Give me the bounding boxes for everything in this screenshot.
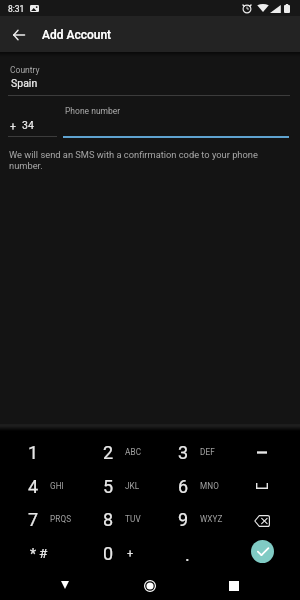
button[interactable]: Navigate up [1, 16, 36, 52]
button[interactable]: Confirm [251, 540, 274, 563]
staticText: ABC [125, 447, 142, 457]
staticText: JKL [125, 481, 140, 491]
button[interactable]: Period [150, 536, 225, 570]
button[interactable]: 4 [0, 469, 75, 503]
staticText: 1 [28, 442, 39, 463]
staticText: 34 [22, 119, 34, 131]
button[interactable]: 7 [0, 502, 75, 536]
staticText: Country [10, 65, 40, 75]
staticText: Spain [11, 77, 38, 89]
staticText: PRQS [50, 514, 72, 524]
staticText: # [39, 545, 48, 561]
button[interactable]: Dash [225, 435, 300, 469]
button[interactable]: 1 [0, 435, 75, 469]
staticText: 8 [103, 509, 114, 530]
button[interactable]: Country calling code +34 [6, 112, 58, 138]
button[interactable]: Phone number [63, 104, 290, 138]
staticText: * [30, 546, 37, 562]
button[interactable]: Home [130, 571, 170, 600]
staticText: MNO [200, 481, 219, 491]
button[interactable]: Back [45, 571, 85, 600]
staticText: + [127, 547, 134, 560]
button[interactable]: 9 [150, 502, 225, 536]
staticText: 4 [28, 476, 39, 497]
button[interactable]: 6 [150, 469, 225, 503]
staticText: DEF [200, 447, 215, 457]
staticText: Phone number [65, 106, 121, 116]
staticText: 8:31 [8, 4, 25, 14]
button[interactable]: 2 [75, 435, 150, 469]
staticText: 9 [178, 509, 189, 530]
button[interactable]: 5 [75, 469, 150, 503]
button[interactable]: Space [225, 469, 300, 503]
button[interactable]: Country: Spain [0, 60, 300, 96]
button[interactable]: 3 [150, 435, 225, 469]
staticText: 5 [103, 476, 114, 497]
staticText: + [10, 120, 16, 132]
staticText: 3 [178, 442, 189, 463]
staticText: Add Account [42, 28, 112, 42]
staticText: GHI [50, 481, 64, 491]
button[interactable]: Backspace [225, 502, 300, 536]
staticText: TUV [125, 514, 141, 524]
staticText: 2 [103, 442, 114, 463]
button[interactable]: Star and pound [0, 536, 75, 570]
button[interactable]: 0 [75, 536, 150, 570]
staticText: 6 [178, 476, 189, 497]
staticText: WXYZ [200, 514, 223, 524]
staticText: 7 [28, 509, 39, 530]
button[interactable]: Recent apps [214, 571, 254, 600]
staticText: . [185, 544, 190, 565]
staticText: 0 [103, 543, 114, 564]
staticText: We will send an SMS with a confirmation … [9, 149, 267, 171]
button[interactable]: 8 [75, 502, 150, 536]
